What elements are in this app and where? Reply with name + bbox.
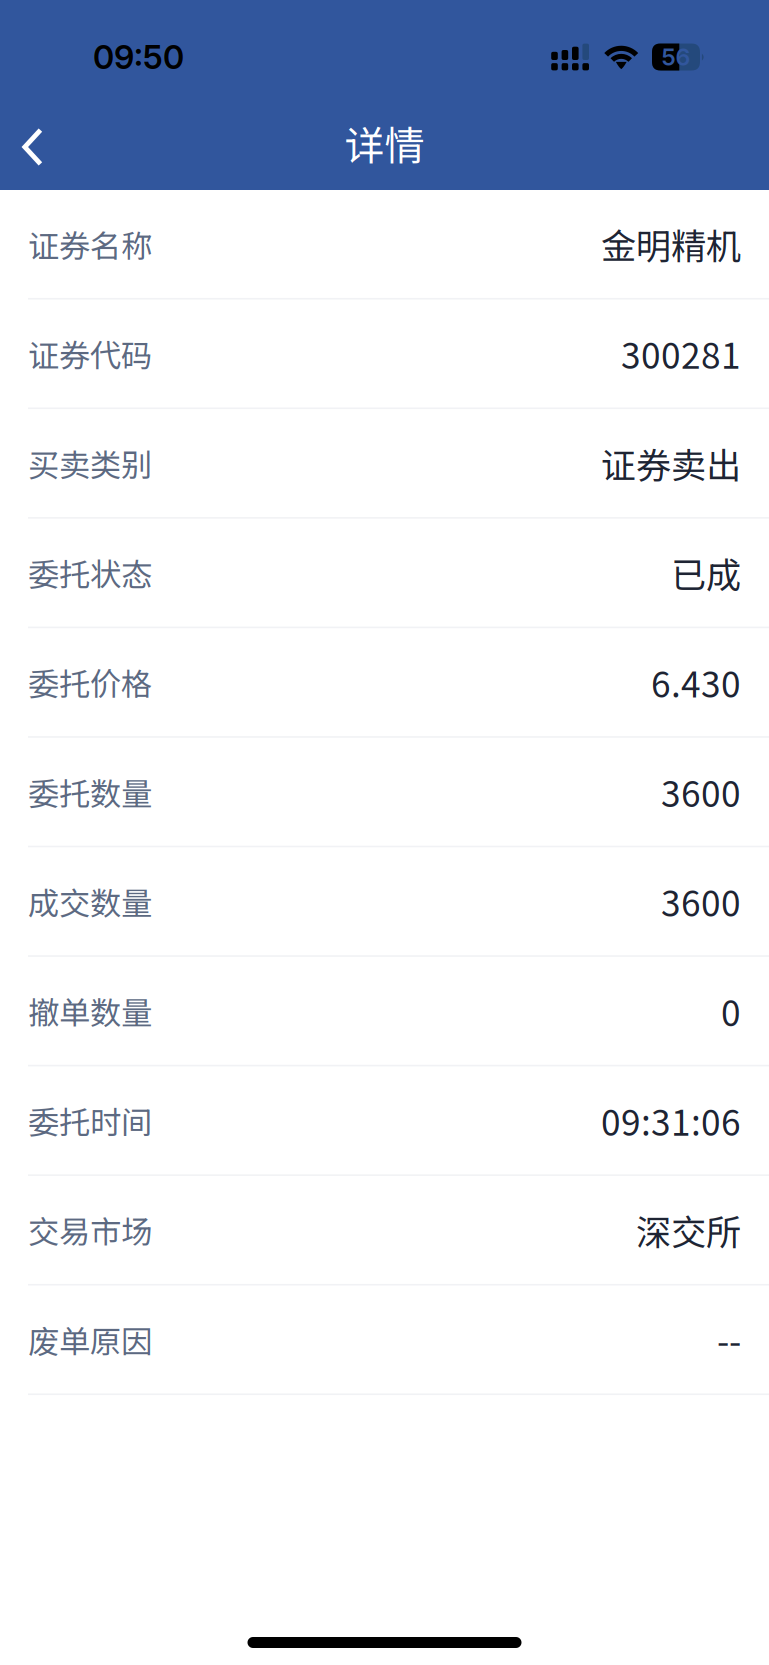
staticText: 证券名称 <box>28 221 152 267</box>
staticText: 成交数量 <box>28 879 152 924</box>
staticText: 证券卖出 <box>601 438 741 489</box>
staticText: 3600 <box>661 766 741 817</box>
staticText: 3600 <box>661 876 741 927</box>
staticText: 0 <box>721 985 741 1036</box>
staticText: 委托数量 <box>28 769 152 814</box>
staticText: 废单原因 <box>28 1317 152 1362</box>
staticText: 委托价格 <box>28 659 152 705</box>
staticText: 撤单数量 <box>28 988 152 1033</box>
button[interactable]: Back <box>0 98 66 188</box>
staticText: 09:50 <box>93 37 184 77</box>
staticText: 金明精机 <box>601 218 741 269</box>
staticText: 证券代码 <box>28 331 152 376</box>
staticText: 交易市场 <box>28 1207 152 1253</box>
staticText: 6.430 <box>651 657 741 708</box>
staticText: 300281 <box>621 328 741 379</box>
staticText: 09:31:06 <box>601 1095 741 1146</box>
staticText: 已成 <box>671 547 741 598</box>
staticText: 56 <box>661 43 690 71</box>
staticText: 详情 <box>344 114 424 172</box>
staticText: 买卖类别 <box>28 440 152 486</box>
staticText: 委托时间 <box>28 1098 152 1143</box>
staticText: 深交所 <box>636 1204 741 1255</box>
staticText: 委托状态 <box>28 550 152 595</box>
staticText: -- <box>717 1314 741 1365</box>
